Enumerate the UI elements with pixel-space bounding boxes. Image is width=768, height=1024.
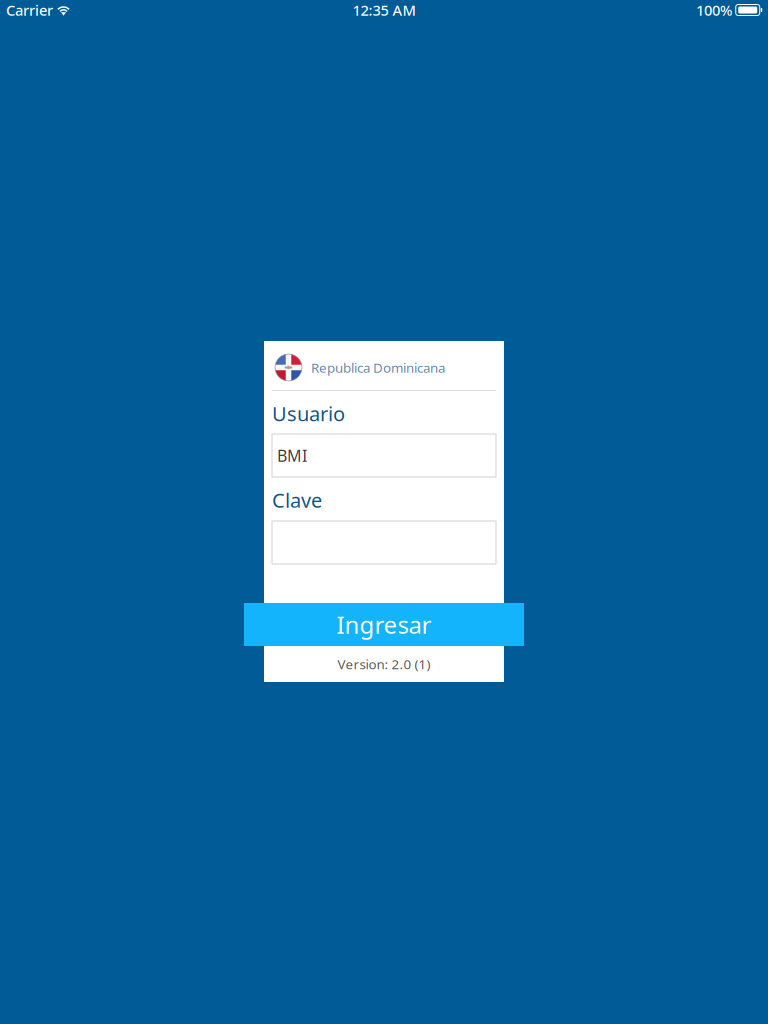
staticText: Clave — [272, 487, 322, 513]
button[interactable]: Usuario — [272, 434, 496, 477]
staticText: Version: 2.0 (1) — [337, 655, 430, 673]
staticText: Republica Dominicana — [311, 359, 445, 376]
staticText: 100% — [696, 0, 732, 20]
staticText: 12:35 AM — [352, 0, 415, 20]
button[interactable]: Ingresar — [244, 603, 524, 646]
staticText: Usuario — [272, 400, 345, 427]
staticText: Carrier — [6, 0, 53, 20]
staticText: Ingresar — [336, 609, 431, 640]
staticText: BMI — [277, 445, 307, 466]
button[interactable]: Clave — [272, 521, 496, 564]
